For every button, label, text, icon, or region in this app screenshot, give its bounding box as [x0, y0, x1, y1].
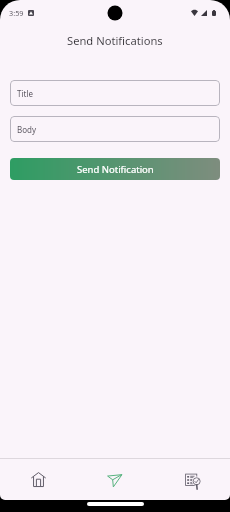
staticText: Send Notification: [77, 163, 154, 176]
button[interactable]: Home: [0, 459, 76, 500]
staticText: 3:59: [9, 8, 24, 18]
button[interactable]: Send Notification: [10, 158, 220, 180]
staticText: Title: [17, 88, 33, 99]
button[interactable]: Send: [76, 459, 153, 500]
staticText: Body: [17, 124, 37, 135]
staticText: Send Notifications: [67, 33, 163, 48]
button[interactable]: Body: [10, 116, 220, 142]
button[interactable]: Title: [10, 80, 220, 106]
button[interactable]: Logs: [153, 459, 230, 500]
